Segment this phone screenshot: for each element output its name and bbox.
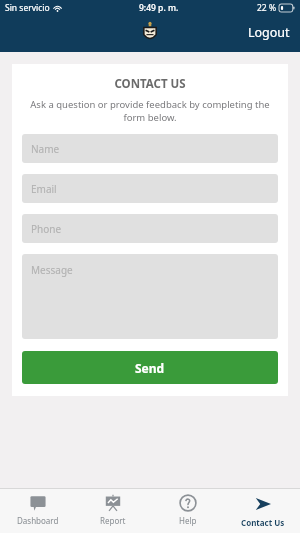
other: Help [179,494,197,512]
staticText: Ask a question or provide feedback by co… [24,98,276,124]
button[interactable]: Report [75,488,150,533]
other: Contact Us [253,494,273,514]
button[interactable]: Name [22,134,278,163]
staticText: Email [31,182,57,196]
button[interactable]: Send [22,351,278,384]
button[interactable]: Dashboard [0,488,75,533]
staticText: Message [31,263,73,277]
staticText: Contact Us [241,517,285,528]
button[interactable]: Help [150,488,225,533]
staticText: Send [135,360,165,376]
staticText: Report [100,515,126,526]
other: Report [104,494,122,512]
staticText: Name [31,142,60,156]
staticText: 9:49 p. m. [139,2,179,14]
staticText: CONTACT US [22,76,278,92]
staticText: Help [179,515,197,526]
button[interactable]: Contact Us [225,488,300,533]
staticText: 22 % [257,2,276,14]
staticText: Phone [31,222,62,236]
staticText: Dashboard [17,515,59,526]
button[interactable]: Email [22,174,278,203]
staticText: Logout [248,24,290,41]
other: Dashboard [29,494,47,512]
button[interactable]: Logout [238,20,300,45]
button[interactable]: Phone [22,214,278,243]
staticText: Sin servicio [5,2,50,14]
